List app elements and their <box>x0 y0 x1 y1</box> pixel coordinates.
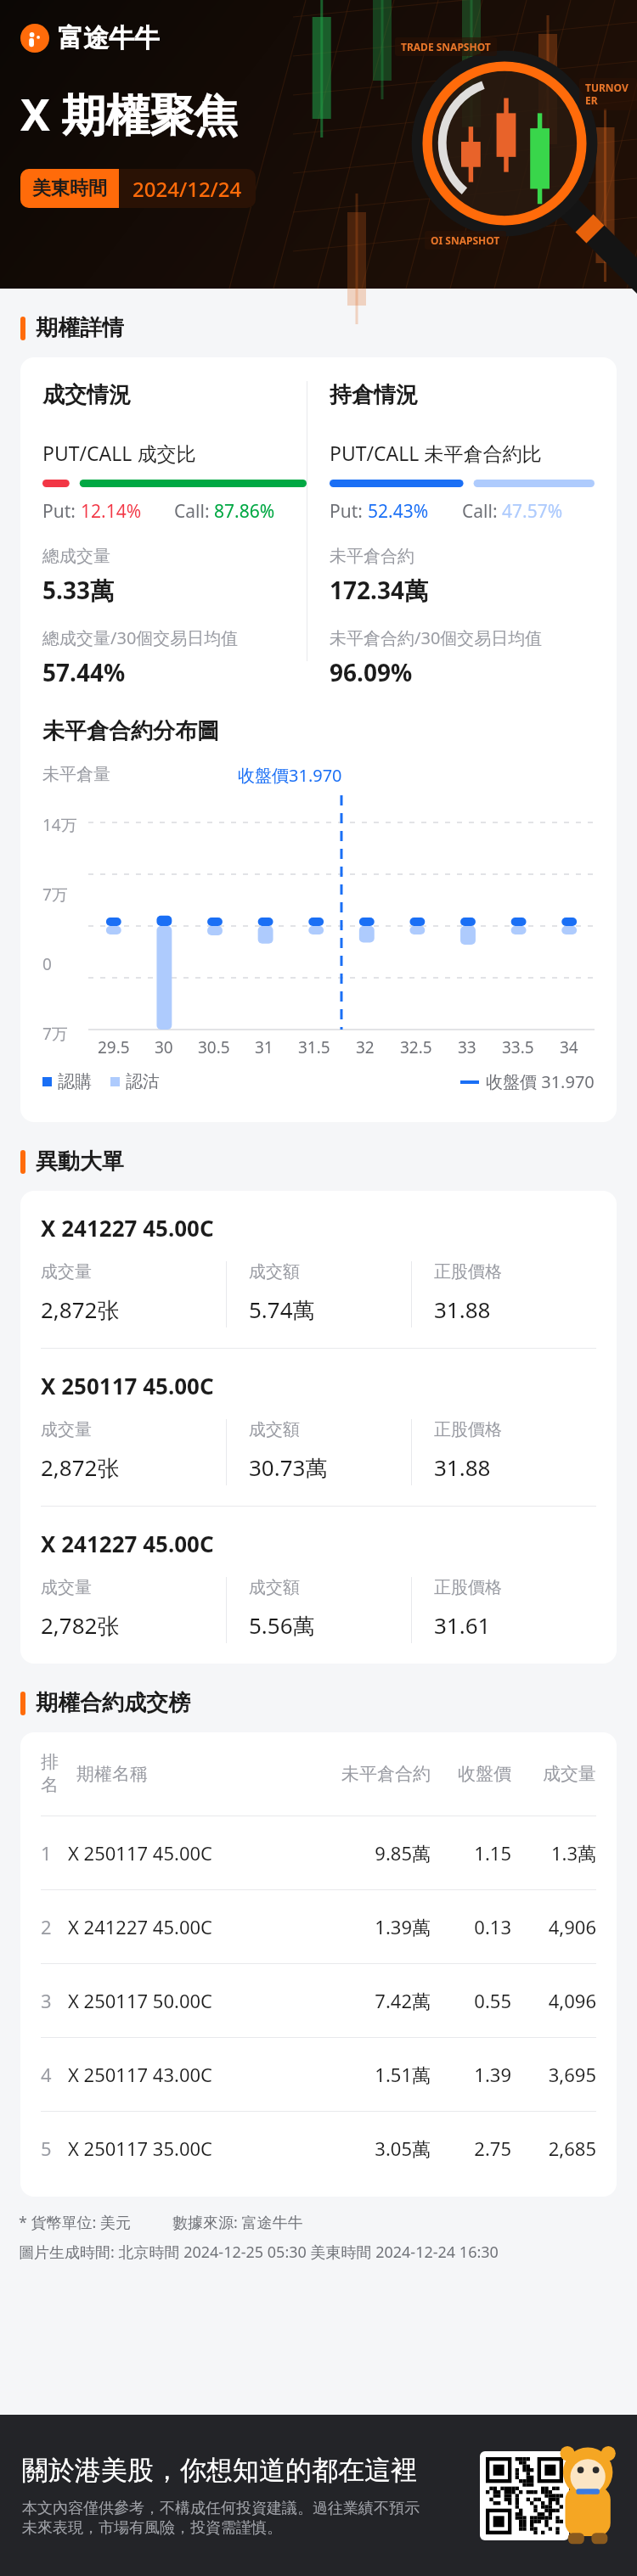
staticText: 57.44% <box>42 656 126 688</box>
staticText: 87.86% <box>214 499 275 524</box>
staticText: 2.75 <box>431 2135 511 2161</box>
staticText: X 241227 45.00C <box>41 1529 214 1558</box>
staticText: 成交量 <box>511 1763 596 1785</box>
staticText: 3 <box>41 1988 68 2013</box>
staticText: X 250117 50.00C <box>68 1988 337 2013</box>
staticText: 5.74萬 <box>249 1294 315 1325</box>
staticText: 31.5 <box>298 1036 330 1058</box>
button[interactable]: 1 <box>20 1816 617 1890</box>
staticText: 期權名稱 <box>76 1763 337 1785</box>
staticText: 4 <box>41 2062 68 2087</box>
staticText: 未平倉合約 <box>337 1763 431 1785</box>
staticText: 收盤價 31.970 <box>486 1070 595 1093</box>
button[interactable]: X 241227 45.00C <box>20 1191 617 1349</box>
staticText: 33 <box>458 1036 476 1058</box>
staticText: 47.57% <box>502 499 563 524</box>
staticText: 5 <box>41 2135 68 2161</box>
staticText: 未平倉合約/30個交易日均值 <box>330 626 543 649</box>
staticText: 7万 <box>42 1023 68 1045</box>
staticText: 2,685 <box>511 2135 596 2161</box>
staticText: 9.85萬 <box>337 1840 431 1866</box>
staticText: 96.09% <box>330 656 413 688</box>
staticText: 2024/12/24 <box>132 175 242 203</box>
staticText: 成交量 <box>41 1261 92 1282</box>
staticText: Call: <box>462 499 502 524</box>
button[interactable]: 3 <box>20 1964 617 2038</box>
staticText: 未平倉合約分布圖 <box>42 717 219 745</box>
staticText: 7万 <box>42 884 68 906</box>
staticText: 成交額 <box>249 1577 300 1598</box>
staticText: 數據來源: 富途牛牛 <box>172 2212 303 2233</box>
staticText: 32.5 <box>400 1036 432 1058</box>
staticText: Put: <box>330 499 368 524</box>
button[interactable]: 2 <box>20 1890 617 1964</box>
staticText: 31.88 <box>434 1294 491 1324</box>
staticText: 認購 <box>58 1071 92 1092</box>
staticText: 收盤價31.970 <box>238 764 342 787</box>
staticText: 期權合約成交榜 <box>36 1689 190 1717</box>
button[interactable]: 4 <box>20 2038 617 2112</box>
staticText: 52.43% <box>368 499 429 524</box>
staticText: 期權詳情 <box>36 314 124 342</box>
staticText: 美東時間 <box>32 177 107 200</box>
staticText: 12.14% <box>81 499 142 524</box>
staticText: 2,872张 <box>41 1294 120 1325</box>
staticText: 未平倉合約 <box>330 546 414 567</box>
staticText: 成交量 <box>41 1577 92 1598</box>
staticText: 5.56萬 <box>249 1610 315 1641</box>
staticText: 1 <box>41 1840 68 1866</box>
staticText: 3,695 <box>511 2062 596 2087</box>
staticText: X 241227 45.00C <box>68 1914 337 1939</box>
staticText: 0 <box>42 953 52 975</box>
staticText: 30.5 <box>198 1036 230 1058</box>
staticText: 關於港美股，你想知道的都在這裡 <box>22 2454 417 2487</box>
staticText: 7.42萬 <box>337 1988 431 2013</box>
staticText: 富途牛牛 <box>58 22 160 54</box>
staticText: X 250117 45.00C <box>41 1371 214 1400</box>
staticText: X 250117 35.00C <box>68 2135 337 2161</box>
staticText: X 241227 45.00C <box>41 1213 214 1243</box>
staticText: 成交額 <box>249 1419 300 1440</box>
staticText: 2,782张 <box>41 1610 120 1641</box>
staticText: Put: <box>42 499 81 524</box>
staticText: 0.13 <box>431 1914 511 1939</box>
staticText: 1.3萬 <box>511 1840 596 1866</box>
other: QR code <box>480 2451 569 2540</box>
staticText: 未平倉量 <box>42 764 110 785</box>
button[interactable]: 5 <box>20 2112 617 2185</box>
staticText: TURNOVER <box>585 81 631 108</box>
staticText: 正股價格 <box>434 1261 502 1282</box>
staticText: 圖片生成時間: 北京時間 2024-12-25 05:30 美東時間 2024-… <box>19 2242 499 2263</box>
staticText: OI SNAPSHOT <box>431 233 500 247</box>
staticText: 正股價格 <box>434 1419 502 1440</box>
staticText: 2 <box>41 1914 68 1939</box>
staticText: 31.61 <box>434 1610 491 1640</box>
staticText: 34 <box>560 1036 578 1058</box>
staticText: 收盤價 <box>431 1763 511 1785</box>
staticText: 3.05萬 <box>337 2135 431 2161</box>
staticText: 1.51萬 <box>337 2062 431 2087</box>
staticText: 持倉情況 <box>330 381 418 409</box>
button[interactable]: 美東時間 <box>20 169 256 208</box>
staticText: 正股價格 <box>434 1577 502 1598</box>
staticText: 成交額 <box>249 1261 300 1282</box>
staticText: 成交量 <box>41 1419 92 1440</box>
staticText: 5.33萬 <box>42 574 114 606</box>
staticText: 認沽 <box>126 1071 160 1092</box>
staticText: 1.15 <box>431 1840 511 1866</box>
button[interactable]: X 250117 45.00C <box>20 1349 617 1507</box>
staticText: 1.39萬 <box>337 1914 431 1939</box>
staticText: 成交情況 <box>42 381 131 409</box>
staticText: 30 <box>155 1036 173 1058</box>
button[interactable]: X 241227 45.00C <box>20 1507 617 1664</box>
staticText: 172.34萬 <box>330 574 428 606</box>
staticText: 31 <box>255 1036 273 1058</box>
staticText: 排名 <box>41 1751 68 1797</box>
staticText: X 250117 45.00C <box>68 1840 337 1866</box>
staticText: 異動大單 <box>36 1148 124 1176</box>
staticText: X 期權聚焦 <box>20 83 239 143</box>
staticText: 14万 <box>42 814 77 836</box>
staticText: 32 <box>356 1036 375 1058</box>
staticText: 0.55 <box>431 1988 511 2013</box>
staticText: 30.73萬 <box>249 1452 328 1483</box>
